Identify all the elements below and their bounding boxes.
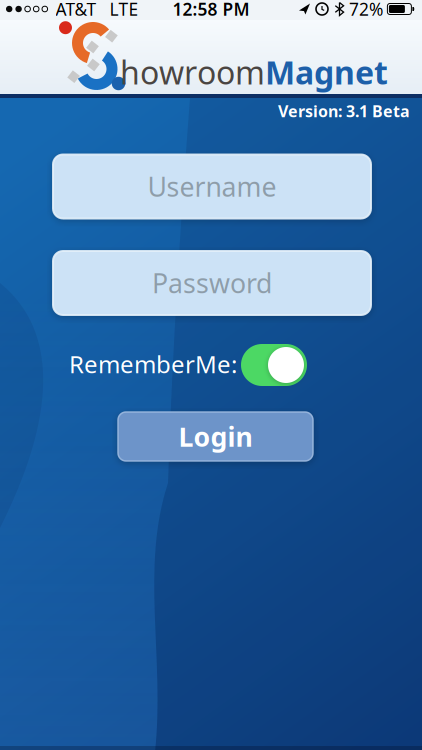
staticText: AT&T: [56, 0, 97, 20]
staticText: Login: [178, 419, 252, 454]
staticText: 12:58 PM: [172, 0, 249, 20]
staticText: LTE: [110, 0, 139, 20]
button[interactable]: Username: [53, 154, 371, 218]
staticText: Username: [147, 169, 276, 204]
staticText: RememberMe:: [69, 348, 237, 380]
button[interactable]: Login: [118, 412, 313, 461]
staticText: Version: 3.1 Beta: [278, 100, 410, 122]
button[interactable]: Remember Me: [241, 344, 307, 386]
staticText: Password: [152, 265, 272, 301]
staticText: Magnet: [265, 51, 388, 93]
staticText: howroom: [120, 51, 265, 93]
staticText: 72%: [349, 0, 383, 20]
button[interactable]: Password: [53, 251, 371, 315]
